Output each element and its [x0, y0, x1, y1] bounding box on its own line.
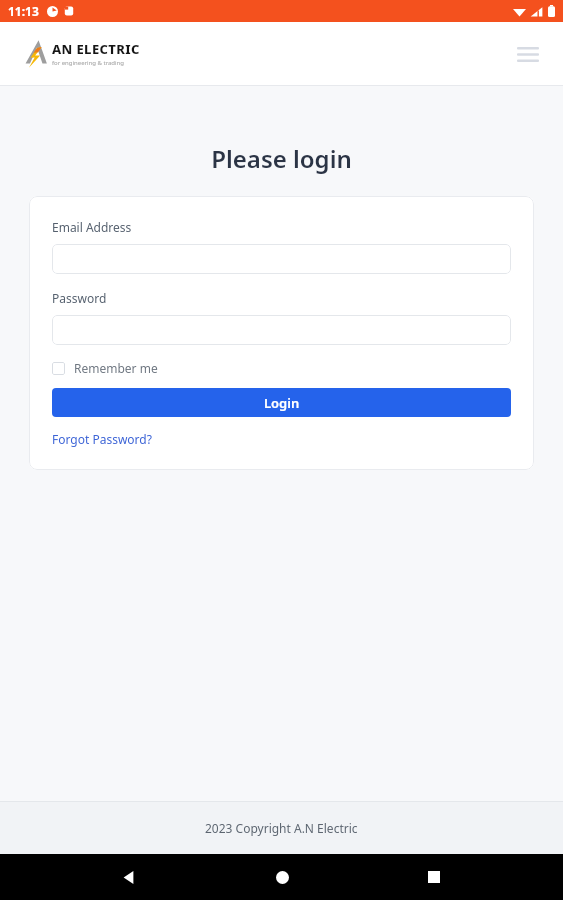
staticText: Password: [52, 290, 107, 306]
staticText: Forgot Password?: [52, 431, 152, 447]
button[interactable]: Email Address field: [52, 244, 511, 274]
staticText: 2023 Copyright A.N Electric: [205, 820, 358, 836]
staticText: Remember me: [74, 360, 158, 376]
button[interactable]: Home: [259, 854, 305, 900]
staticText: Login: [264, 394, 300, 412]
staticText: 11:13: [8, 3, 39, 19]
staticText: Email Address: [52, 219, 132, 235]
staticText: Please login: [0, 142, 563, 175]
button[interactable]: Recent apps: [411, 854, 457, 900]
button[interactable]: Password field: [52, 315, 511, 345]
button[interactable]: Login: [52, 388, 511, 417]
button[interactable]: Open navigation menu: [511, 37, 545, 71]
button[interactable]: Back: [106, 854, 152, 900]
button[interactable]: Forgot Password?: [52, 431, 152, 447]
staticText: for engineering & trading: [52, 59, 125, 67]
staticText: AN ELECTRIC: [52, 40, 140, 58]
button[interactable]: Remember me: [52, 360, 158, 376]
button[interactable]: AN ELECTRIC: [24, 37, 140, 70]
